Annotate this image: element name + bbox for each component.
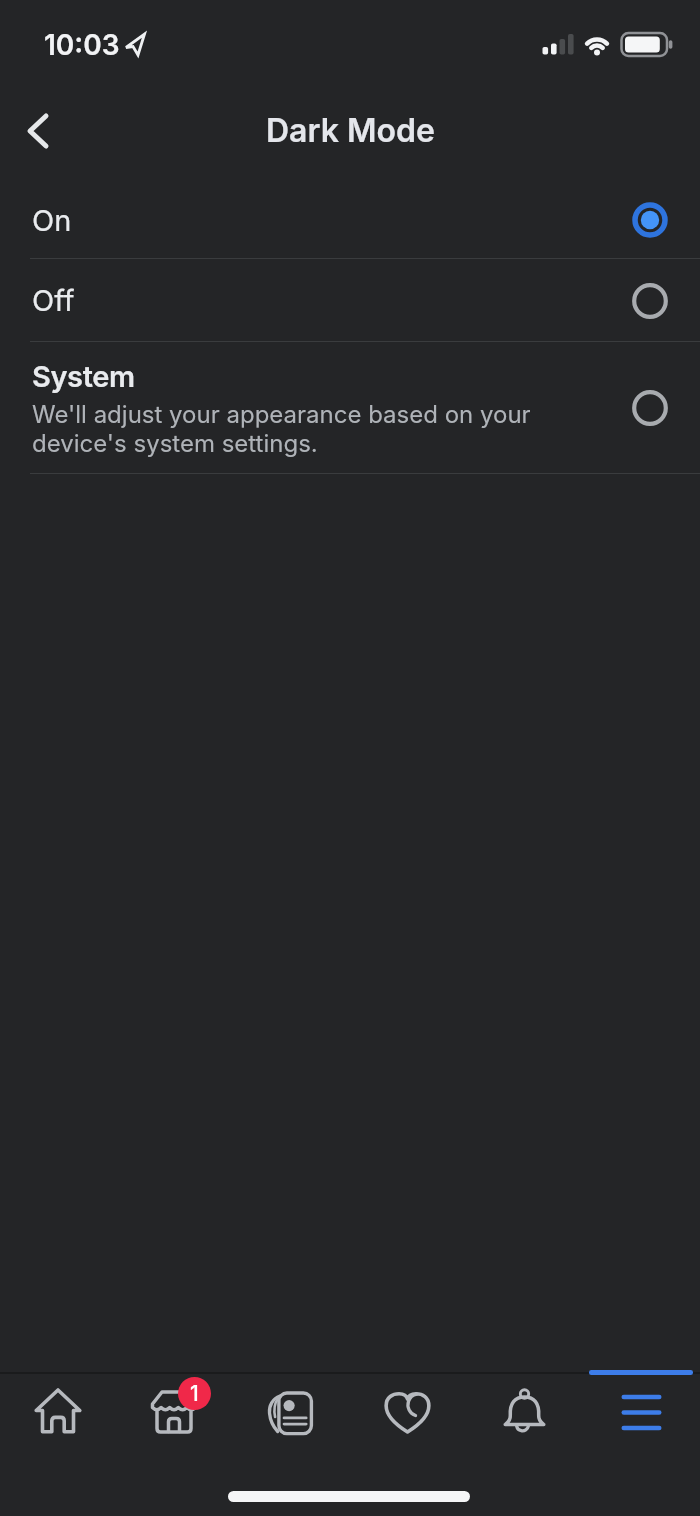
button[interactable]: On — [0, 181, 700, 259]
button[interactable]: System — [0, 342, 700, 474]
staticText: Off — [32, 283, 75, 318]
button[interactable] — [349, 1373, 466, 1449]
staticText: 10:03 — [44, 28, 120, 62]
button[interactable]: Off — [0, 260, 700, 341]
button[interactable] — [10, 105, 62, 157]
button[interactable] — [232, 1373, 349, 1449]
staticText: System — [32, 359, 135, 394]
button[interactable] — [466, 1373, 583, 1449]
staticText: 1 — [190, 1381, 199, 1406]
button[interactable]: 1 — [116, 1373, 232, 1449]
staticText: We'll adjust your appearance based on yo… — [32, 400, 531, 458]
button[interactable] — [0, 1373, 116, 1449]
button[interactable] — [583, 1373, 700, 1449]
staticText: Dark Mode — [266, 111, 435, 150]
staticText: On — [32, 203, 72, 238]
